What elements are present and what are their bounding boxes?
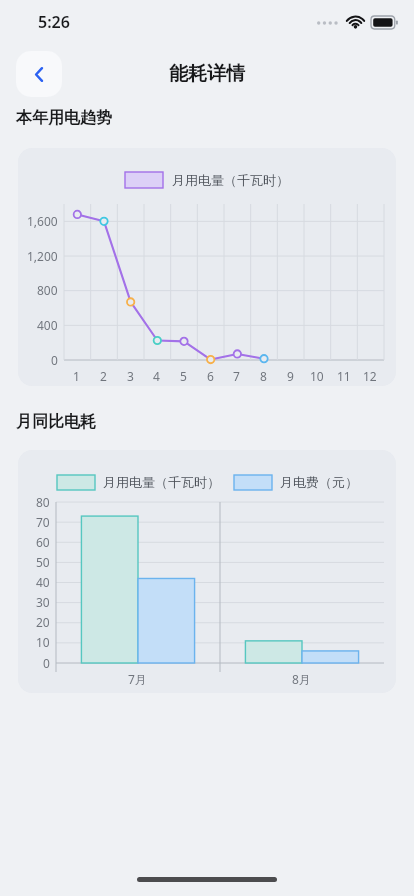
staticText: 10: [310, 368, 324, 384]
staticText: 8月: [292, 671, 311, 687]
staticText: 30: [36, 594, 50, 610]
button[interactable]: 月用电量（千瓦时）: [18, 148, 396, 386]
staticText: 60: [36, 534, 50, 550]
staticText: 6: [207, 368, 214, 384]
staticText: 80: [36, 494, 50, 510]
staticText: 月同比电耗: [16, 412, 414, 432]
staticText: 2: [100, 368, 107, 384]
staticText: 11: [337, 368, 351, 384]
staticText: 本年用电趋势: [16, 108, 414, 128]
staticText: 0: [51, 352, 58, 368]
staticText: 4: [153, 368, 160, 384]
staticText: 50: [36, 554, 50, 570]
staticText: 能耗详情: [169, 62, 245, 86]
staticText: 5:26: [38, 11, 70, 33]
staticText: 800: [37, 282, 58, 298]
staticText: 20: [36, 614, 50, 630]
staticText: 400: [37, 317, 58, 333]
staticText: 1,600: [27, 213, 58, 229]
staticText: 3: [127, 368, 134, 384]
button[interactable]: 月用电量（千瓦时）: [18, 450, 396, 693]
staticText: 9: [287, 368, 294, 384]
staticText: 10: [36, 634, 50, 650]
staticText: 7: [233, 368, 240, 384]
staticText: 70: [36, 514, 50, 530]
staticText: 12: [363, 368, 377, 384]
staticText: 月用电量（千瓦时）: [103, 474, 220, 490]
staticText: 8: [260, 368, 267, 384]
staticText: 0: [43, 655, 50, 671]
staticText: 1: [73, 368, 80, 384]
staticText: 40: [36, 574, 50, 590]
staticText: 5: [180, 368, 187, 384]
staticText: 月电费（元）: [280, 474, 358, 490]
staticText: 7月: [128, 671, 147, 687]
button[interactable]: Back: [16, 51, 62, 97]
staticText: 1,200: [27, 248, 58, 264]
staticText: 月用电量（千瓦时）: [172, 172, 289, 188]
